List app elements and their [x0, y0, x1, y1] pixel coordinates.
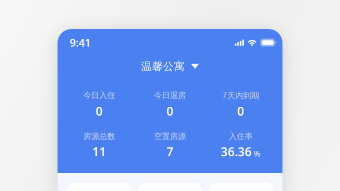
staticText: 7 — [166, 144, 173, 159]
staticText: 0 — [166, 103, 173, 119]
button[interactable] — [135, 130, 205, 158]
staticText: 7天内到期 — [222, 90, 259, 101]
button[interactable] — [64, 130, 135, 158]
staticText: 今日入住 — [83, 90, 115, 100]
button[interactable] — [64, 89, 135, 117]
staticText: % — [254, 148, 261, 159]
staticText: 0 — [237, 103, 244, 119]
button[interactable] — [205, 130, 276, 158]
button[interactable] — [135, 89, 205, 117]
button[interactable]: 温馨公寓 — [141, 59, 199, 73]
staticText: 空置房源 — [154, 131, 186, 141]
staticText: 9:41 — [70, 35, 91, 50]
staticText: 11 — [92, 144, 106, 159]
staticText: 入住率 — [229, 131, 253, 141]
staticText: 今日退房 — [154, 90, 186, 100]
staticText: 36.36 — [221, 144, 252, 159]
staticText: 房源总数 — [83, 131, 115, 141]
staticText: 温馨公寓 — [141, 60, 185, 73]
staticText: 0 — [96, 103, 103, 119]
button[interactable] — [205, 89, 276, 117]
